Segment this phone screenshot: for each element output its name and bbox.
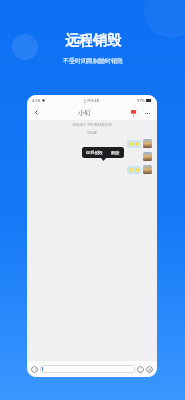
button[interactable]: More options: [142, 108, 152, 118]
button[interactable]: [143, 165, 152, 174]
staticText: 4:38: [32, 98, 40, 103]
staticText: 不受时间限制随时销毁: [63, 57, 123, 65]
button[interactable]: 删除: [107, 147, 124, 158]
staticText: 远程销毁: [65, 32, 121, 50]
button[interactable]: Alerts: [128, 108, 138, 118]
button[interactable]: [40, 365, 135, 373]
button[interactable]: Emoji: [137, 366, 144, 373]
staticText: 97%: [137, 98, 145, 103]
staticText: 小钉: [78, 109, 91, 117]
staticText: 09:48: [32, 130, 152, 135]
button[interactable]: [143, 152, 152, 161]
staticText: 你拒绝了小钉的好友申请: [32, 123, 152, 128]
staticText: 远程销毁: [86, 150, 103, 155]
button[interactable]: [127, 140, 141, 148]
button[interactable]: [127, 166, 141, 174]
staticText: 删除: [111, 150, 120, 155]
button[interactable]: Back: [32, 108, 41, 117]
button[interactable]: [143, 139, 152, 148]
button[interactable]: Add attachment: [146, 366, 153, 373]
button[interactable]: Voice input: [31, 366, 38, 373]
button[interactable]: 远程销毁: [82, 147, 107, 158]
staticText: 上午9:48: [83, 98, 99, 103]
